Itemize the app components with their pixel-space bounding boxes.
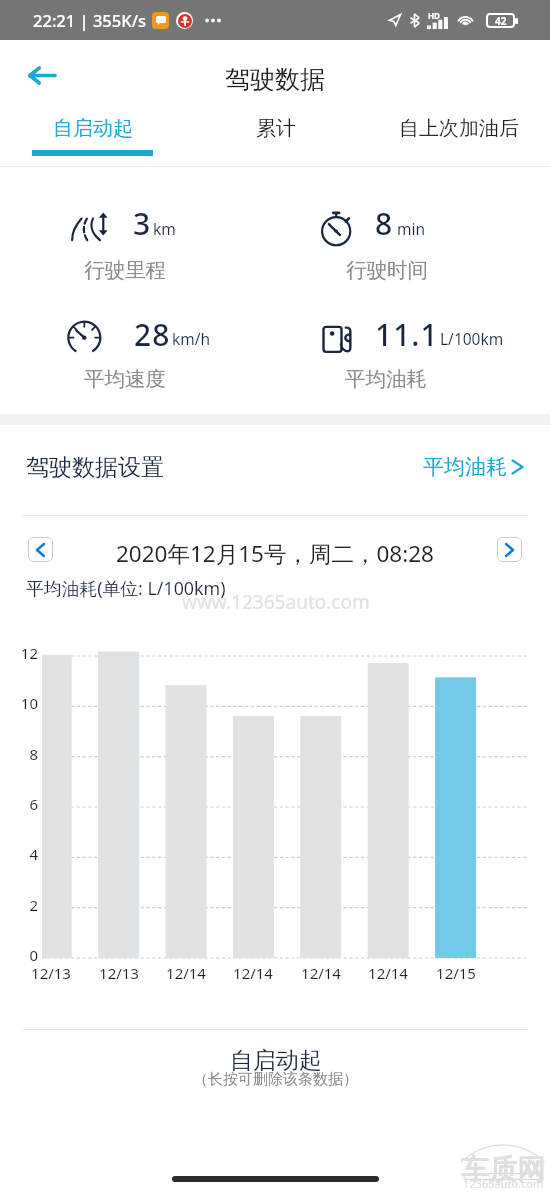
staticText: 2 [29, 895, 38, 915]
staticText: 驾驶数据设置 [26, 453, 164, 482]
staticText: 平均油耗 [423, 454, 507, 480]
staticText: 8 [375, 203, 394, 244]
button[interactable]: 自启动起 [0, 116, 184, 167]
staticText: 平均速度 [84, 366, 166, 392]
staticText: （长按可删除该条数据） [193, 1070, 358, 1089]
staticText: 12/14 [368, 963, 408, 983]
staticText: 12365auto.com [463, 1176, 544, 1191]
staticText: 累计 [256, 116, 296, 141]
staticText: 自启动起 [53, 116, 133, 141]
button[interactable]: 自上次加油后 [367, 116, 550, 167]
staticText: 自上次加油后 [399, 116, 519, 141]
staticText: km/h [172, 328, 211, 349]
staticText: 6 [29, 794, 38, 814]
staticText: 10 [20, 693, 38, 713]
staticText: 11.1 [375, 314, 439, 355]
staticText: 28 [134, 314, 171, 355]
staticText: 平均油耗(单位: L/100km) [26, 576, 226, 600]
staticText: 12/14 [166, 963, 206, 983]
button[interactable]: Back [22, 56, 62, 94]
staticText: 车质网 [461, 1152, 545, 1187]
staticText: 驾驶数据 [225, 64, 325, 95]
button[interactable]: 累计 [184, 116, 367, 167]
button[interactable]: Next day [497, 537, 522, 562]
staticText: 12/13 [31, 963, 71, 983]
staticText: 22:21 | 355K/s [33, 9, 147, 31]
staticText: L/100km [440, 328, 504, 349]
staticText: 3 [133, 203, 152, 244]
staticText: 8 [29, 744, 38, 764]
staticText: 平均油耗 [345, 366, 427, 392]
staticText: 42 [495, 14, 507, 28]
staticText: HD [428, 10, 440, 21]
button[interactable]: 驾驶数据设置 [0, 444, 550, 490]
staticText: 12/14 [233, 963, 273, 983]
staticText: km [153, 218, 176, 239]
staticText: 12 [20, 643, 38, 663]
staticText: 自启动起 [230, 1046, 322, 1075]
staticText: 行驶时间 [346, 257, 428, 283]
staticText: 行驶里程 [84, 257, 166, 283]
staticText: www.12365auto.com [182, 589, 370, 615]
staticText: 12/15 [436, 963, 476, 983]
staticText: min [397, 218, 426, 239]
staticText: 4 [29, 844, 38, 864]
button[interactable]: Previous day [28, 537, 53, 562]
staticText: 2020年12月15号，周二，08:28 [116, 538, 434, 569]
staticText: 12/13 [99, 963, 139, 983]
staticText: 12/14 [301, 963, 341, 983]
staticText: 0 [29, 945, 38, 965]
